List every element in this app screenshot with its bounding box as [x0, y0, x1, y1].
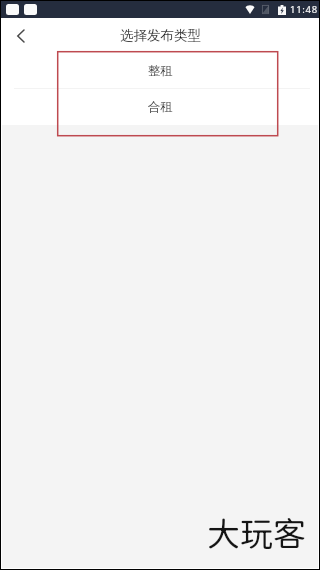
staticText: 合租 [148, 99, 173, 115]
staticText: 大玩客 [207, 514, 306, 553]
button[interactable]: Back [6, 22, 34, 50]
button[interactable]: 合租 [1, 89, 319, 125]
button[interactable]: 整租 [1, 53, 319, 89]
staticText: 11:48 [290, 3, 318, 16]
staticText: 选择发布类型 [120, 27, 201, 44]
staticText: 整租 [148, 63, 173, 79]
